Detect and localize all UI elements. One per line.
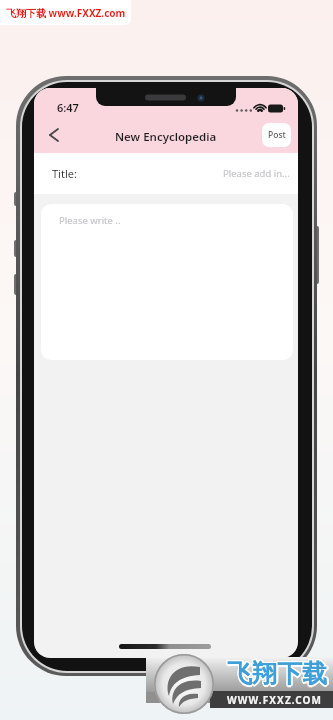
- staticText: Post: [268, 129, 286, 141]
- staticText: 飞翔下载: [228, 657, 328, 688]
- staticText: Please add in...: [223, 167, 290, 180]
- button[interactable]: Title:: [34, 153, 298, 194]
- staticText: 飞翔下载: [227, 657, 327, 688]
- staticText: 飞翔下载: [228, 659, 328, 690]
- staticText: 飞翔下载: [229, 658, 329, 689]
- staticText: 6:47: [57, 100, 79, 115]
- staticText: 飞翔下载: [226, 658, 326, 689]
- staticText: 飞翔下载: [226, 657, 326, 688]
- staticText: 飞翔下载: [227, 660, 327, 691]
- button[interactable]: [154, 654, 214, 714]
- staticText: 飞翔下载: [227, 658, 327, 689]
- staticText: 飞翔下载 www.FXXZ.com: [6, 6, 126, 20]
- staticText: WWW.FXXZ.COM: [227, 693, 323, 707]
- button[interactable]: Post: [262, 123, 291, 147]
- staticText: Title:: [52, 166, 77, 181]
- button[interactable]: 飞翔下载 www.FXXZ.com: [0, 0, 131, 25]
- staticText: 飞翔下载: [226, 659, 326, 690]
- staticText: Please write ..: [59, 214, 121, 227]
- button[interactable]: [42, 121, 66, 149]
- staticText: New Encyclopedia: [115, 129, 217, 145]
